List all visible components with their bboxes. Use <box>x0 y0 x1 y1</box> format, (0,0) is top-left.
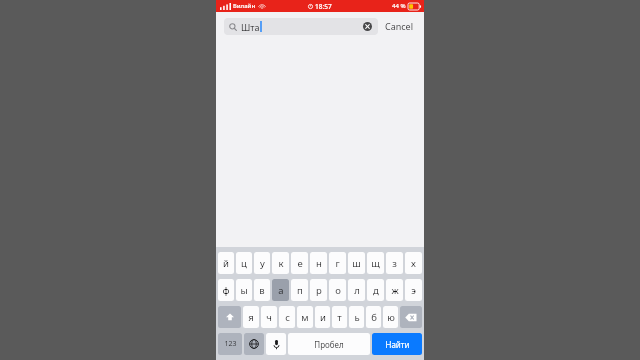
staticText: Пробел <box>314 339 344 350</box>
button[interactable]: б <box>366 306 381 328</box>
staticText: и <box>320 311 326 324</box>
staticText: х <box>411 257 416 270</box>
staticText: д <box>373 284 379 297</box>
staticText: г <box>335 257 340 270</box>
button[interactable]: д <box>367 279 384 301</box>
button[interactable]: я <box>243 306 259 328</box>
button[interactable]: е <box>291 252 308 274</box>
staticText: т <box>337 311 342 324</box>
staticText: с <box>285 311 290 324</box>
button[interactable]: с <box>279 306 295 328</box>
button[interactable]: Шта <box>224 18 378 35</box>
button[interactable]: Cancel <box>383 17 416 35</box>
button[interactable]: ю <box>383 306 398 328</box>
button[interactable]: ж <box>386 279 403 301</box>
staticText: 18:57 <box>315 2 332 11</box>
staticText: з <box>392 257 397 270</box>
staticText: э <box>411 284 416 297</box>
button[interactable]: к <box>272 252 289 274</box>
button[interactable]: Shift <box>218 306 241 328</box>
staticText: я <box>248 311 254 324</box>
staticText: Шта <box>241 21 260 33</box>
staticText: е <box>297 257 303 270</box>
button[interactable]: н <box>310 252 327 274</box>
button[interactable]: ш <box>348 252 365 274</box>
button[interactable]: щ <box>367 252 384 274</box>
button[interactable]: Найти <box>372 333 422 355</box>
staticText: 44 % <box>392 2 406 10</box>
button[interactable]: Пробел <box>288 333 370 355</box>
button[interactable]: ф <box>218 279 234 301</box>
staticText: ц <box>241 257 247 270</box>
button[interactable]: л <box>348 279 365 301</box>
staticText: ю <box>387 311 395 324</box>
button[interactable]: а <box>272 279 289 301</box>
staticText: ч <box>266 311 272 324</box>
staticText: б <box>371 311 377 324</box>
staticText: щ <box>371 257 380 270</box>
button[interactable]: ь <box>349 306 364 328</box>
button[interactable]: х <box>405 252 422 274</box>
button[interactable]: п <box>291 279 308 301</box>
staticText: л <box>354 284 360 297</box>
button[interactable]: р <box>310 279 327 301</box>
staticText: р <box>316 284 322 297</box>
button[interactable]: у <box>254 252 270 274</box>
staticText: ж <box>391 284 399 297</box>
staticText: Cancel <box>385 20 414 32</box>
button[interactable]: й <box>218 252 234 274</box>
button[interactable]: Backspace <box>400 306 422 328</box>
staticText: а <box>278 284 284 297</box>
staticText: 123 <box>224 339 237 349</box>
button[interactable]: м <box>297 306 313 328</box>
staticText: й <box>223 257 229 270</box>
staticText: о <box>335 284 341 297</box>
button[interactable]: о <box>329 279 346 301</box>
button[interactable]: э <box>405 279 422 301</box>
staticText: в <box>259 284 265 297</box>
staticText: Билайн <box>233 2 256 10</box>
button[interactable]: Clear text <box>362 21 373 32</box>
button[interactable]: Change keyboard language <box>244 333 264 355</box>
staticText: ф <box>222 284 230 297</box>
staticText: н <box>316 257 322 270</box>
staticText: Найти <box>385 339 410 350</box>
button[interactable]: г <box>329 252 346 274</box>
button[interactable]: Voice input <box>266 333 286 355</box>
button[interactable]: 123 <box>218 333 242 355</box>
staticText: п <box>297 284 303 297</box>
button[interactable]: и <box>315 306 330 328</box>
staticText: м <box>301 311 309 324</box>
staticText: ь <box>354 311 360 324</box>
staticText: ы <box>240 284 248 297</box>
button[interactable]: т <box>332 306 347 328</box>
button[interactable]: ч <box>261 306 277 328</box>
button[interactable]: з <box>386 252 403 274</box>
button[interactable]: ы <box>236 279 252 301</box>
staticText: к <box>278 257 284 270</box>
button[interactable]: в <box>254 279 270 301</box>
staticText: у <box>260 257 265 270</box>
staticText: ш <box>352 257 361 270</box>
button[interactable]: ц <box>236 252 252 274</box>
